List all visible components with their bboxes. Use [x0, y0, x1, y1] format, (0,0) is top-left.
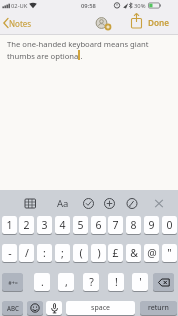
- staticText: :: [43, 246, 46, 260]
- button[interactable]: ;: [55, 244, 70, 262]
- staticText: 30%: [134, 2, 146, 10]
- button[interactable]: ": [162, 244, 177, 262]
- staticText: Aa: [57, 197, 69, 210]
- staticText: 8: [130, 218, 137, 232]
- button[interactable]: 6: [91, 216, 106, 234]
- button[interactable]: 4: [55, 216, 70, 234]
- button[interactable]: ': [132, 273, 148, 291]
- staticText: (: [79, 246, 83, 260]
- staticText: &: [130, 246, 138, 260]
- staticText: !: [115, 275, 118, 289]
- staticText: /: [25, 246, 29, 260]
- staticText: ': [139, 275, 142, 289]
- button[interactable]: 0: [162, 216, 177, 234]
- staticText: 9: [148, 218, 155, 232]
- staticText: @: [147, 246, 157, 260]
- staticText: 3: [41, 218, 48, 232]
- button[interactable]: !: [108, 273, 124, 291]
- button[interactable]: 5: [73, 216, 88, 234]
- button[interactable]: 1: [2, 216, 17, 234]
- button[interactable]: 7: [108, 216, 123, 234]
- staticText: The one-handed keyboard means giant thum…: [7, 39, 149, 62]
- button[interactable]: space: [66, 301, 135, 315]
- button[interactable]: /: [19, 244, 34, 262]
- staticText: return: [148, 303, 169, 313]
- staticText: 02-UK: [11, 2, 28, 10]
- button[interactable]: [94, 15, 114, 31]
- staticText: space: [91, 303, 110, 313]
- button[interactable]: @: [144, 244, 159, 262]
- button[interactable]: Notes: [3, 17, 32, 29]
- button[interactable]: ABC: [2, 301, 23, 315]
- staticText: 0: [166, 218, 173, 232]
- button[interactable]: (: [73, 244, 88, 262]
- button[interactable]: [129, 12, 144, 31]
- button[interactable]: .: [34, 273, 50, 291]
- staticText: -: [8, 246, 12, 260]
- button[interactable]: -: [2, 244, 17, 262]
- staticText: 2: [23, 218, 30, 232]
- staticText: ": [167, 246, 172, 260]
- staticText: 6: [95, 218, 102, 232]
- button[interactable]: &: [126, 244, 141, 262]
- button[interactable]: ,: [58, 273, 74, 291]
- button[interactable]: ?: [83, 273, 99, 291]
- button[interactable]: [46, 301, 62, 315]
- staticText: £: [112, 246, 119, 260]
- button[interactable]: Done: [148, 17, 170, 28]
- staticText: 1: [6, 218, 13, 232]
- button[interactable]: £: [108, 244, 123, 262]
- staticText: ABC: [7, 304, 19, 312]
- staticText: ): [97, 246, 101, 260]
- button[interactable]: 8: [126, 216, 141, 234]
- button[interactable]: 2: [19, 216, 34, 234]
- staticText: Done: [148, 17, 170, 28]
- staticText: Notes: [9, 18, 32, 29]
- staticText: 4: [59, 218, 66, 232]
- staticText: #+=: [8, 279, 18, 286]
- button[interactable]: return: [140, 301, 177, 315]
- button[interactable]: 3: [37, 216, 52, 234]
- button[interactable]: [27, 301, 43, 315]
- staticText: ;: [61, 246, 64, 260]
- button[interactable]: :: [37, 244, 52, 262]
- staticText: ?: [89, 275, 94, 289]
- staticText: ,: [65, 275, 68, 289]
- button[interactable]: #+=: [2, 273, 23, 291]
- staticText: 7: [112, 218, 119, 232]
- staticText: 5: [77, 218, 84, 232]
- button[interactable]: [153, 273, 174, 291]
- staticText: .: [41, 275, 44, 289]
- button[interactable]: 9: [144, 216, 159, 234]
- button[interactable]: ): [91, 244, 106, 262]
- staticText: 09:58: [81, 2, 96, 10]
